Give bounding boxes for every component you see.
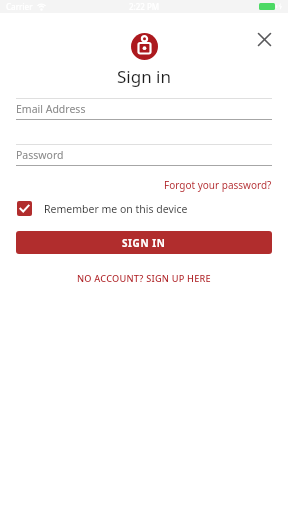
staticText: 2:22 PM [129, 1, 160, 12]
staticText: Forgot your password? [164, 178, 272, 192]
staticText: Remember me on this device [44, 202, 188, 216]
staticText: Sign in [117, 65, 171, 88]
button[interactable]: NO ACCOUNT? SIGN UP HERE [77, 271, 211, 285]
button[interactable] [250, 25, 278, 53]
staticText: Password [16, 148, 64, 162]
button[interactable]: SIGN IN [16, 231, 272, 254]
button[interactable]: Password [16, 144, 272, 166]
staticText: SIGN IN [122, 236, 166, 250]
button[interactable]: Forgot your password? [0, 178, 272, 192]
staticText: Carrier [6, 1, 33, 12]
staticText: Email Address [16, 102, 86, 116]
staticText: NO ACCOUNT? SIGN UP HERE [77, 272, 211, 285]
button[interactable]: Remember me on this device [17, 201, 288, 216]
button[interactable]: Email Address [16, 98, 272, 120]
